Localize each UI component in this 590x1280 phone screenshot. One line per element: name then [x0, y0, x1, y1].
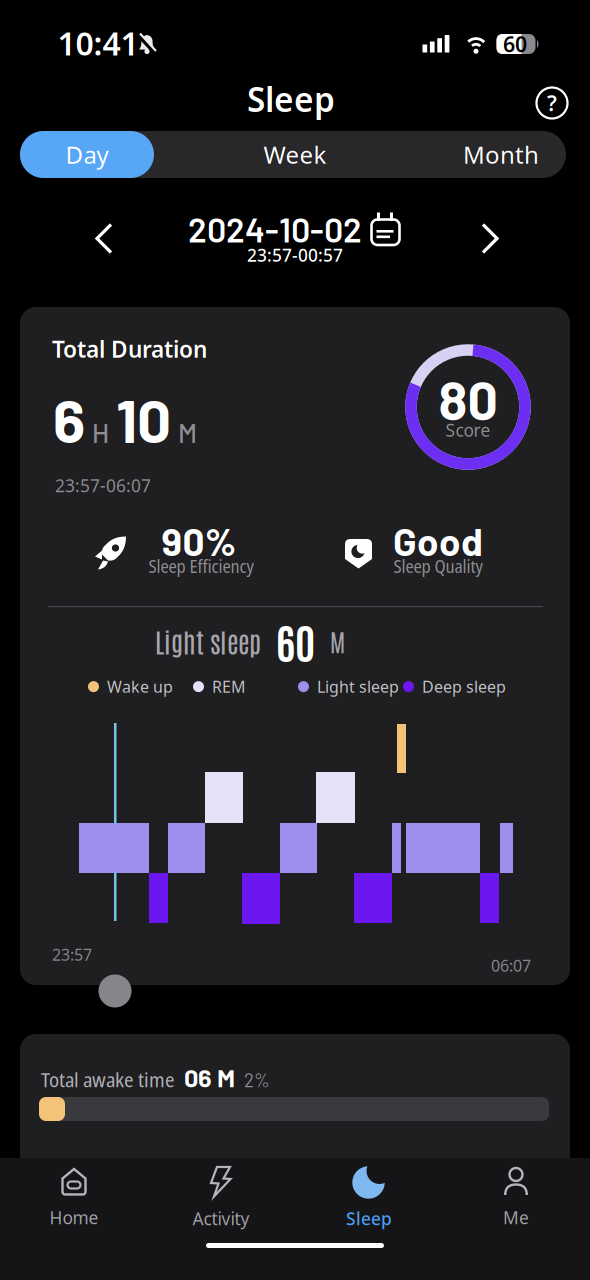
- staticText: 10:41: [57, 22, 138, 64]
- staticText: 60: [503, 30, 527, 58]
- staticText: Wake up: [107, 676, 173, 697]
- staticText: Total Duration: [52, 334, 207, 364]
- staticText: Home: [49, 1206, 98, 1229]
- staticText: Me: [503, 1206, 529, 1229]
- staticText: Sleep Efficiency: [148, 554, 253, 578]
- button[interactable]: Me: [446, 1156, 586, 1240]
- staticText: 2%: [244, 1069, 270, 1091]
- staticText: Day: [65, 139, 108, 170]
- staticText: 80: [438, 367, 497, 431]
- staticText: M: [330, 625, 345, 657]
- staticText: Light sleep: [155, 624, 261, 658]
- staticText: 23:57: [52, 944, 92, 965]
- staticText: 06:07: [491, 955, 531, 976]
- staticText: Total awake time: [41, 1065, 175, 1093]
- button[interactable]: Day: [20, 131, 154, 178]
- staticText: Deep sleep: [422, 676, 506, 697]
- staticText: Sleep: [247, 77, 335, 121]
- button[interactable]: Activity: [151, 1156, 291, 1240]
- button[interactable]: Home: [4, 1156, 144, 1240]
- button[interactable]: Sleep: [299, 1156, 439, 1240]
- staticText: 60: [276, 614, 315, 668]
- staticText: REM: [212, 676, 246, 697]
- staticText: M: [178, 416, 197, 448]
- staticText: Light sleep: [317, 676, 399, 697]
- staticText: Score: [445, 418, 490, 441]
- staticText: Week: [263, 139, 326, 170]
- button[interactable]: Month: [436, 131, 566, 178]
- staticText: Sleep Quality: [393, 554, 482, 578]
- button[interactable]: [84, 219, 124, 259]
- staticText: 2024-10-02: [188, 209, 362, 249]
- staticText: 90%: [161, 517, 236, 564]
- button[interactable]: [98, 974, 131, 1007]
- staticText: Month: [463, 139, 539, 170]
- staticText: H: [92, 416, 109, 448]
- staticText: ?: [547, 89, 557, 117]
- staticText: Activity: [192, 1207, 249, 1230]
- staticText: 06 M: [184, 1062, 235, 1092]
- staticText: Sleep: [346, 1207, 392, 1230]
- staticText: 10: [116, 383, 171, 455]
- button[interactable]: 2024-10-02: [188, 209, 400, 249]
- button[interactable]: Week: [154, 131, 436, 178]
- staticText: 23:57-00:57: [247, 243, 343, 266]
- staticText: Good: [393, 517, 483, 564]
- staticText: 6: [53, 383, 85, 455]
- button[interactable]: [470, 219, 510, 259]
- button[interactable]: ?: [535, 86, 569, 120]
- staticText: 23:57-06:07: [55, 474, 151, 497]
